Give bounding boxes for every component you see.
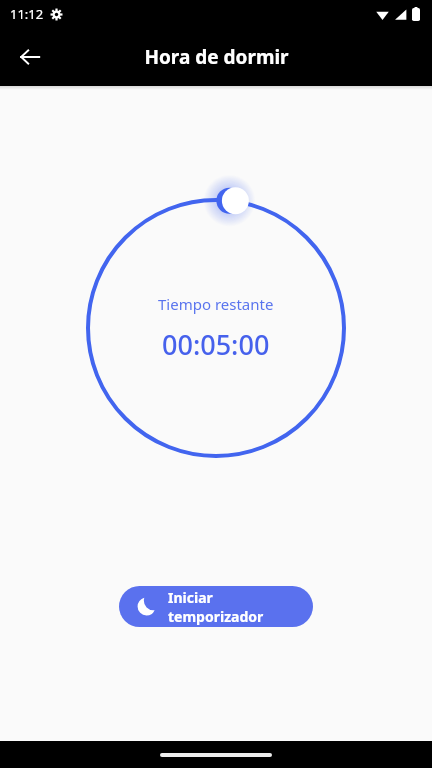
staticText: Tiempo restante [158,294,274,314]
staticText: Iniciar temporizador [168,588,293,626]
button[interactable]: Atrás [10,37,50,77]
staticText: 11:12 [10,5,44,23]
staticText: Hora de dormir [144,44,289,70]
staticText: 00:05:00 [162,326,270,363]
button[interactable]: Iniciar temporizador [119,586,313,627]
